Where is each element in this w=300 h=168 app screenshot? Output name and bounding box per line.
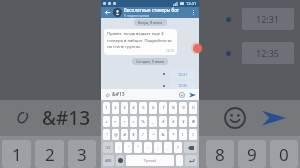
button[interactable]: Русский bbox=[126, 155, 174, 166]
staticText: % bbox=[141, 119, 145, 125]
button[interactable]: Enter bbox=[185, 155, 197, 166]
staticText: 6 bbox=[152, 105, 155, 111]
staticText: Вчера, 8 июня bbox=[138, 20, 163, 25]
button[interactable]: 1 bbox=[103, 102, 110, 114]
button[interactable]: Backspace bbox=[184, 142, 197, 153]
button[interactable]: More options bbox=[190, 9, 197, 16]
staticText: × bbox=[114, 119, 117, 125]
staticText: _ bbox=[152, 119, 154, 125]
staticText: 9 bbox=[247, 143, 257, 166]
button[interactable]: Chat avatar bbox=[113, 8, 122, 17]
button[interactable]: Back bbox=[103, 8, 112, 17]
staticText: @ bbox=[114, 132, 118, 138]
staticText: 7 bbox=[162, 105, 165, 111]
staticText: ( bbox=[182, 132, 184, 138]
button[interactable]: Emoji keyboard bbox=[116, 155, 124, 166]
button[interactable]: Бесплатные стикеры бот bbox=[124, 7, 190, 18]
button[interactable]: 5 bbox=[139, 102, 147, 114]
button[interactable]: ÷ bbox=[121, 116, 128, 127]
staticText: 12:35 bbox=[178, 83, 188, 88]
button[interactable]: ) bbox=[189, 129, 197, 140]
staticText: 12:31 bbox=[178, 72, 188, 77]
staticText: & bbox=[161, 132, 165, 138]
staticText: = bbox=[132, 119, 135, 125]
button[interactable]: 1/2 bbox=[103, 142, 113, 153]
button[interactable]: , bbox=[164, 142, 172, 153]
button[interactable]: 8 bbox=[169, 102, 177, 114]
button[interactable]: = bbox=[130, 116, 137, 127]
button[interactable]: " bbox=[134, 142, 142, 153]
button[interactable]: Recording indicator bbox=[191, 42, 203, 54]
button[interactable]: × bbox=[112, 116, 119, 127]
button[interactable]: 6 bbox=[149, 102, 157, 114]
button[interactable]: ! bbox=[103, 129, 110, 140]
button[interactable]: ^ bbox=[149, 129, 157, 140]
staticText: Бесплатные стикеры бот bbox=[124, 7, 180, 13]
button[interactable]: 7 bbox=[159, 102, 167, 114]
button[interactable]: ¥ bbox=[179, 116, 187, 127]
button[interactable]: 12:35 bbox=[170, 82, 196, 89]
button[interactable]: - bbox=[115, 142, 122, 153]
staticText: &#13 bbox=[42, 105, 91, 131]
button[interactable]: € bbox=[159, 116, 167, 127]
button[interactable]: Привет, когда выдает еще 4 стикера в наб… bbox=[104, 29, 177, 55]
staticText: $ bbox=[132, 132, 135, 138]
button[interactable]: ? bbox=[174, 142, 182, 153]
button[interactable]: Attach file bbox=[103, 91, 111, 99]
button[interactable]: ABB bbox=[103, 155, 114, 166]
staticText: 12:35 bbox=[256, 47, 280, 59]
staticText: 5 подписчиков bbox=[124, 13, 150, 18]
button[interactable]: _ bbox=[149, 116, 157, 127]
staticText: 4 bbox=[132, 105, 135, 111]
staticText: , bbox=[167, 145, 169, 151]
staticText: ABB bbox=[105, 158, 112, 163]
button[interactable]: + bbox=[103, 116, 110, 127]
staticText: # bbox=[123, 132, 126, 138]
staticText: ? bbox=[177, 145, 179, 151]
staticText: 12:31 bbox=[186, 1, 197, 6]
staticText: 1 bbox=[12, 143, 22, 166]
button[interactable]: Send bbox=[188, 90, 197, 99]
button[interactable]: % bbox=[139, 116, 147, 127]
staticText: ^ bbox=[152, 132, 155, 138]
staticText: 0 bbox=[192, 105, 195, 111]
staticText: Сегодня, 9 июня bbox=[136, 59, 164, 64]
button[interactable]: 0 bbox=[189, 102, 197, 114]
staticText: 8 bbox=[215, 143, 225, 166]
button[interactable]: * bbox=[169, 129, 177, 140]
button[interactable]: 2 bbox=[112, 102, 119, 114]
staticText: 12:31 bbox=[256, 13, 280, 25]
staticText: ' bbox=[128, 145, 129, 151]
staticText: + bbox=[105, 119, 108, 125]
staticText: € bbox=[162, 119, 165, 125]
button[interactable]: £ bbox=[169, 116, 177, 127]
staticText: 5 bbox=[142, 105, 145, 111]
staticText: ₩ bbox=[192, 119, 195, 125]
button[interactable]: ₩ bbox=[189, 116, 197, 127]
staticText: 2 bbox=[45, 143, 55, 166]
button[interactable]: / bbox=[139, 129, 147, 140]
staticText: 9 bbox=[182, 105, 185, 111]
staticText: Привет, когда выдает еще 4 стикера в наб… bbox=[107, 31, 174, 49]
button[interactable]: $ bbox=[130, 129, 137, 140]
button[interactable]: ; bbox=[154, 142, 162, 153]
staticText: 8 bbox=[172, 105, 175, 111]
button[interactable]: &#13 bbox=[112, 91, 178, 98]
button[interactable]: . bbox=[176, 155, 183, 166]
staticText: 3 bbox=[123, 105, 126, 111]
button[interactable]: : bbox=[144, 142, 152, 153]
staticText: ÷ bbox=[123, 119, 126, 125]
staticText: 12:13 bbox=[166, 49, 174, 53]
button[interactable]: 12:31 bbox=[170, 69, 196, 79]
button[interactable]: & bbox=[159, 129, 167, 140]
button[interactable]: 9 bbox=[179, 102, 187, 114]
button[interactable]: 3 bbox=[121, 102, 128, 114]
button[interactable]: Emoji bbox=[178, 91, 186, 99]
button[interactable]: @ bbox=[112, 129, 119, 140]
button[interactable]: 4 bbox=[130, 102, 137, 114]
button[interactable]: # bbox=[121, 129, 128, 140]
staticText: : bbox=[147, 145, 149, 151]
button[interactable]: ' bbox=[124, 142, 132, 153]
button[interactable]: ( bbox=[179, 129, 187, 140]
staticText: Русский bbox=[144, 159, 157, 163]
